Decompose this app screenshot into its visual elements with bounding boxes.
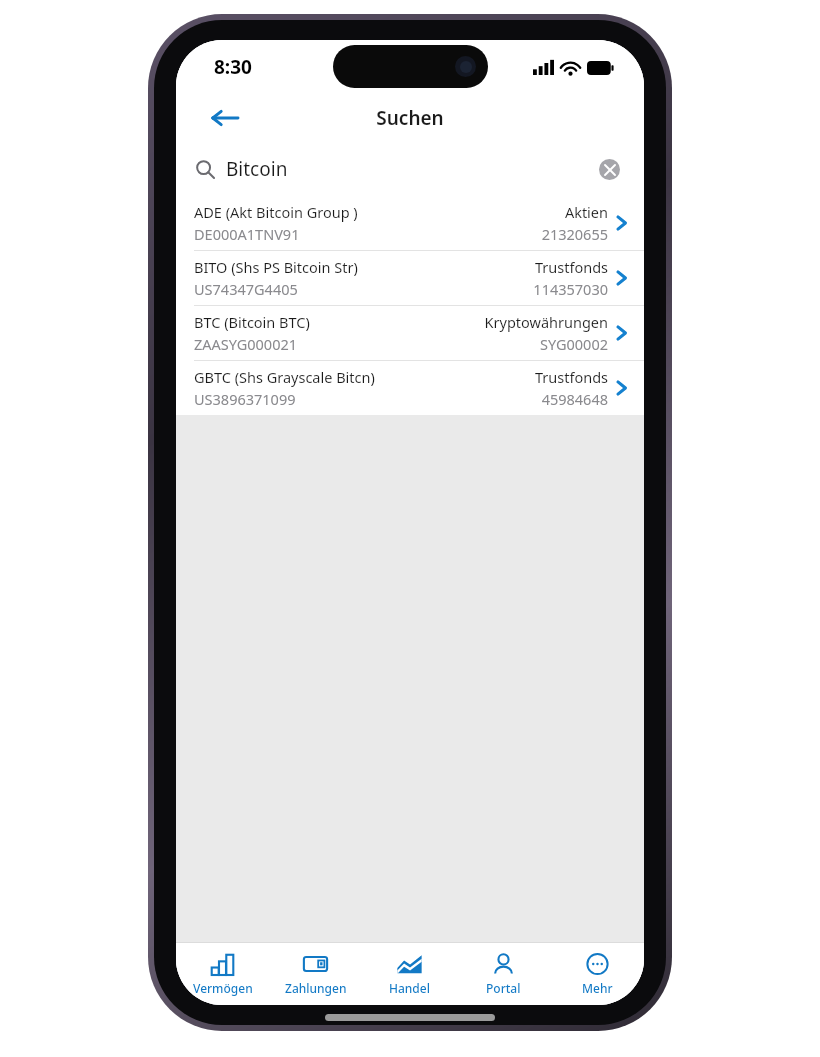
- staticText: US74347G4405: [194, 279, 298, 299]
- button[interactable]: Portal: [456, 943, 550, 1005]
- staticText: 114357030: [533, 279, 608, 299]
- button[interactable]: ADE (Akt Bitcoin Group ): [176, 196, 644, 250]
- button[interactable]: BITO (Shs PS Bitcoin Str): [176, 251, 644, 305]
- staticText: DE000A1TNV91: [194, 224, 300, 244]
- staticText: SYG00002: [540, 334, 608, 354]
- staticText: BITO (Shs PS Bitcoin Str): [194, 257, 358, 277]
- button[interactable]: BTC (Bitcoin BTC): [176, 306, 644, 360]
- staticText: 21320655: [541, 224, 608, 244]
- staticText: Mehr: [582, 980, 613, 996]
- staticText: ADE (Akt Bitcoin Group ): [194, 202, 358, 222]
- button[interactable]: Vermögen: [176, 943, 269, 1005]
- button[interactable]: GBTC (Shs Grayscale Bitcn): [176, 361, 644, 415]
- staticText: BTC (Bitcoin BTC): [194, 312, 310, 332]
- button[interactable]: Bitcoin: [176, 142, 644, 196]
- staticText: Trustfonds: [534, 367, 608, 387]
- staticText: Aktien: [564, 202, 608, 222]
- staticText: Zahlungen: [285, 980, 347, 996]
- button[interactable]: Mehr: [550, 943, 644, 1005]
- staticText: Vermögen: [193, 980, 253, 996]
- button[interactable]: Zurück: [200, 94, 248, 142]
- staticText: US3896371099: [194, 389, 296, 409]
- staticText: Suchen: [376, 105, 444, 131]
- button[interactable]: Löschen: [594, 154, 624, 184]
- staticText: ZAASYG000021: [194, 334, 298, 354]
- staticText: Kryptowährungen: [484, 312, 608, 332]
- staticText: GBTC (Shs Grayscale Bitcn): [194, 367, 375, 387]
- staticText: 45984648: [541, 389, 608, 409]
- button[interactable]: Zahlungen: [269, 943, 362, 1005]
- staticText: Bitcoin: [226, 156, 288, 182]
- staticText: Portal: [486, 980, 521, 996]
- staticText: 8:30: [214, 54, 252, 80]
- button[interactable]: Handel: [362, 943, 456, 1005]
- staticText: Trustfonds: [534, 257, 608, 277]
- staticText: Handel: [389, 980, 430, 996]
